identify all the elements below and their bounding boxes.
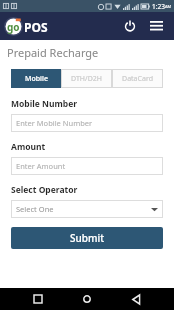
button[interactable]: Logout bbox=[120, 16, 140, 36]
staticText: Enter Amount bbox=[16, 161, 66, 171]
staticText: 1:23 bbox=[152, 2, 165, 11]
staticText: POS bbox=[24, 19, 48, 35]
button[interactable]: Enter Amount bbox=[11, 157, 163, 175]
staticText: Select Operator bbox=[11, 184, 78, 196]
button[interactable]: Recent apps bbox=[27, 288, 49, 310]
button[interactable]: Menu bbox=[146, 16, 166, 36]
button[interactable]: DataCard bbox=[112, 69, 163, 88]
button[interactable]: Mobile bbox=[11, 69, 61, 88]
staticText: Submit bbox=[70, 231, 104, 245]
staticText: Amount bbox=[11, 141, 46, 153]
staticText: Prepaid Recharge bbox=[7, 45, 99, 60]
button[interactable]: Enter Mobile Number bbox=[11, 114, 163, 132]
staticText: AM bbox=[165, 4, 172, 9]
button[interactable]: Back bbox=[125, 288, 147, 310]
button[interactable]: Select One bbox=[11, 200, 163, 218]
staticText: Select One bbox=[16, 204, 54, 214]
button[interactable]: Submit bbox=[11, 227, 163, 249]
button[interactable]: Home bbox=[76, 288, 98, 310]
staticText: Enter Mobile Number bbox=[16, 118, 93, 128]
staticText: DTH/D2H bbox=[71, 74, 102, 84]
staticText: go bbox=[7, 20, 20, 34]
staticText: Mobile Number bbox=[11, 98, 78, 110]
staticText: Mobile bbox=[25, 74, 48, 84]
button[interactable]: DTH/D2H bbox=[61, 69, 112, 88]
staticText: DataCard bbox=[122, 74, 153, 84]
